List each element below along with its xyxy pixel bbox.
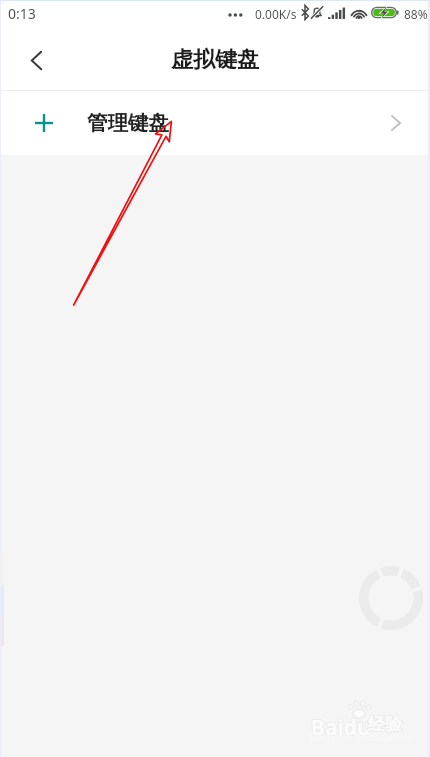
staticText: 0.00K/s <box>255 6 297 22</box>
staticText: Baidu <box>311 713 371 742</box>
staticText: 经验 <box>368 714 402 735</box>
staticText: 经验 <box>368 714 402 735</box>
staticText: Baidu <box>311 713 371 742</box>
staticText: 88% <box>404 6 428 22</box>
staticText: 管理键盘 <box>87 110 169 136</box>
button[interactable]: Back <box>10 34 62 86</box>
button[interactable]: 管理键盘 <box>0 91 430 155</box>
staticText: 虚拟键盘 <box>171 46 259 74</box>
staticText: Jingyan.baidu.com <box>310 729 412 744</box>
staticText: 0:13 <box>8 4 36 23</box>
